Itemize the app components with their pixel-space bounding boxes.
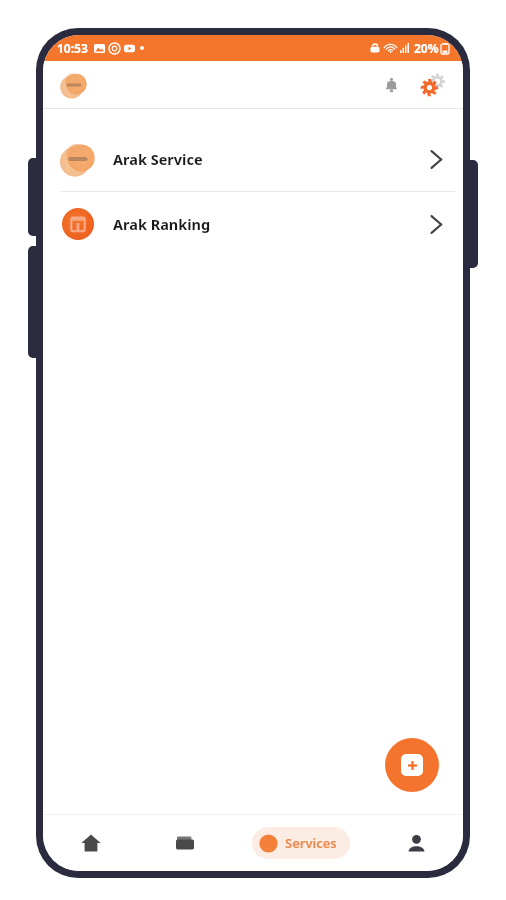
staticText: Services: [285, 834, 337, 852]
button[interactable]: Arak Service: [43, 127, 463, 191]
button[interactable]: Home: [43, 815, 138, 871]
button[interactable]: Notifications: [376, 70, 406, 100]
button[interactable]: Profile logo: [59, 70, 89, 100]
staticText: 20%: [414, 40, 439, 56]
button[interactable]: Services: [252, 827, 350, 859]
button[interactable]: Profile: [369, 815, 463, 871]
staticText: Arak Service: [113, 149, 203, 169]
staticText: Arak Ranking: [113, 214, 211, 234]
button[interactable]: Arak Ranking: [43, 192, 463, 256]
button[interactable]: Add: [385, 738, 439, 792]
button[interactable]: Wallet: [138, 815, 232, 871]
staticText: 10:53: [57, 40, 88, 56]
button[interactable]: Settings: [415, 69, 447, 101]
